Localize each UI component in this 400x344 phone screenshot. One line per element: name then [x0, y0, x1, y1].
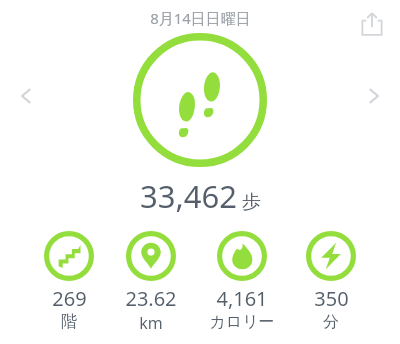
staticText: 23.62 — [125, 285, 177, 312]
button[interactable]: Share — [354, 6, 390, 42]
staticText: 350 — [314, 285, 349, 312]
staticText: 階 — [61, 312, 77, 332]
staticText: 269 — [52, 285, 87, 312]
button[interactable]: Calories — [209, 231, 275, 332]
staticText: 4,161 — [216, 285, 268, 312]
button[interactable]: Next day — [354, 76, 394, 116]
staticText: km — [139, 312, 163, 334]
staticText: 33,462 — [140, 175, 237, 217]
button[interactable]: Active minutes — [306, 231, 356, 332]
staticText: 歩 — [242, 190, 261, 214]
staticText: 8月14日日曜日 — [150, 8, 251, 28]
button[interactable]: Distance — [125, 231, 177, 334]
button[interactable]: Floors climbed — [44, 231, 94, 332]
button[interactable]: Steps — [133, 33, 267, 167]
button[interactable]: Previous day — [6, 76, 46, 116]
staticText: 分 — [323, 312, 339, 332]
staticText: カロリー — [209, 312, 275, 332]
